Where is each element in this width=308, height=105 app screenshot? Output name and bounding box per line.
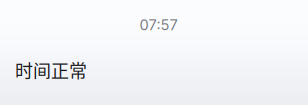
staticText: 07:57 — [139, 16, 177, 34]
staticText: 时间正常 — [15, 57, 87, 83]
